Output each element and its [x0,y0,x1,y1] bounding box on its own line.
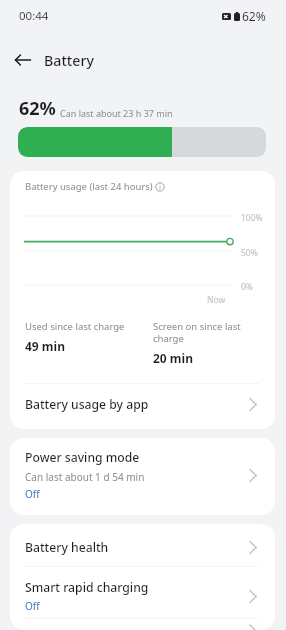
staticText: 49 min [25,338,65,354]
staticText: Battery [44,51,94,70]
staticText: Off [25,487,40,501]
staticText: Battery usage by app [25,396,149,413]
button[interactable]: Battery health [10,524,275,566]
staticText: 00:44 [19,8,49,24]
staticText: Can last about 1 d 54 min [25,470,145,484]
staticText: Now [207,294,226,306]
staticText: 62% [242,8,266,24]
button[interactable]: Back [7,44,39,76]
button[interactable]: Protect battery [10,619,275,630]
staticText: Battery usage (last 24 hours) [25,180,153,193]
button[interactable]: Smart rapid charging [10,567,275,618]
staticText: 20 min [153,350,193,366]
staticText: 0% [241,281,253,293]
staticText: Smart rapid charging [25,579,149,596]
staticText: 100% [241,212,263,224]
staticText: Battery health [25,539,109,556]
staticText: Can last about 23 h 37 min [60,107,173,119]
staticText: Power saving mode [25,449,140,466]
button[interactable]: Battery usage by app [10,384,275,429]
staticText: Screen on since last charge [153,320,261,345]
staticText: Used since last charge [25,320,125,333]
staticText: Off [25,599,40,613]
staticText: 50% [241,247,258,259]
button[interactable]: Power saving mode [10,438,275,515]
staticText: 62% [19,96,56,121]
